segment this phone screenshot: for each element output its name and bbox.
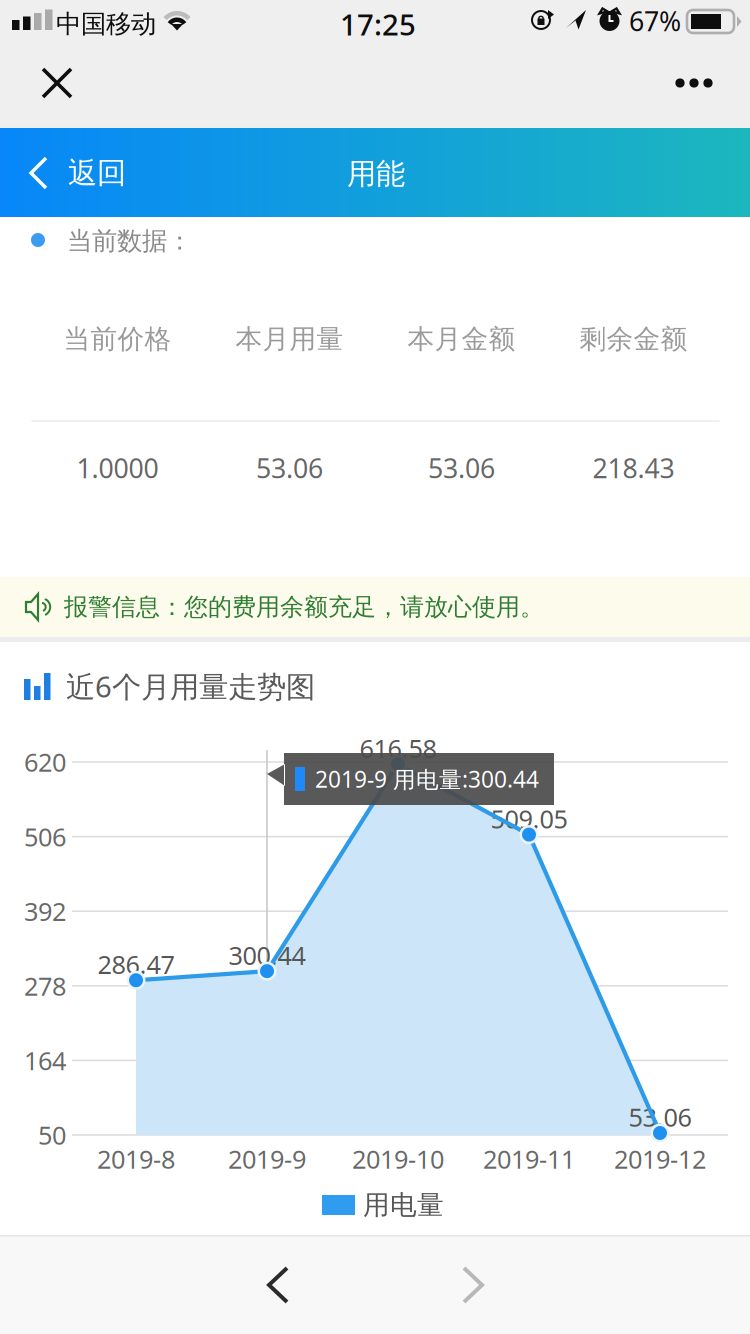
staticText: 当前价格 (63, 323, 171, 355)
staticText: 当前数据： (67, 225, 192, 256)
staticText: 2019-8 (97, 1142, 175, 1176)
staticText: 392 (24, 894, 66, 928)
staticText: 用能 (347, 156, 405, 192)
staticText: 2019-9 (228, 1142, 306, 1176)
staticText: 近6个月用量走势图 (66, 666, 315, 705)
staticText: 50 (38, 1118, 66, 1152)
staticText: 67% (629, 3, 681, 39)
staticText: 本月金额 (407, 323, 515, 355)
staticText: 2019-10 (352, 1142, 444, 1176)
staticText: 1.0000 (76, 450, 158, 486)
staticText: 剩余金额 (579, 323, 687, 355)
staticText: 17:25 (340, 4, 416, 43)
staticText: 53.06 (628, 1100, 691, 1134)
staticText: 218.43 (592, 450, 674, 486)
staticText: 300.44 (228, 938, 305, 972)
staticText: 返回 (68, 155, 126, 191)
staticText: 53.06 (428, 450, 495, 486)
staticText: 509.05 (490, 802, 567, 835)
button[interactable]: Back (0, 1235, 375, 1334)
staticText: 报警信息：您的费用余额充足，请放心使用。 (64, 592, 544, 622)
button[interactable]: Forward (0, 1235, 750, 1334)
staticText: 616.58 (359, 731, 436, 765)
button[interactable]: 返回 (0, 128, 150, 217)
staticText: 286.47 (97, 947, 174, 981)
staticText: 620 (24, 745, 66, 779)
staticText: 164 (24, 1044, 66, 1077)
staticText: 2019-12 (614, 1142, 706, 1176)
button[interactable]: Close (0, 61, 114, 128)
staticText: 2019-9 用电量:300.44 (315, 764, 539, 794)
staticText: 278 (24, 969, 66, 1003)
staticText: 本月用量 (235, 323, 343, 355)
staticText: 2019-11 (483, 1142, 575, 1176)
staticText: 53.06 (256, 450, 323, 486)
staticText: 506 (24, 820, 66, 853)
staticText: 中国移动 (56, 8, 156, 39)
staticText: 用电量 (363, 1189, 444, 1221)
button[interactable]: More (0, 61, 750, 128)
